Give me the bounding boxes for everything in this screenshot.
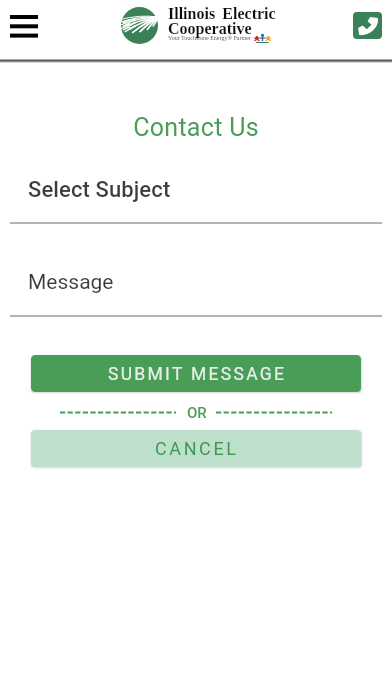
staticText: SUBMIT MESSAGE	[108, 364, 287, 385]
button[interactable]: CANCEL	[31, 430, 361, 467]
button[interactable]: Message	[10, 259, 382, 306]
staticText: Contact Us	[0, 113, 392, 142]
button[interactable]: Select Subject	[10, 166, 382, 213]
button[interactable]: SUBMIT MESSAGE	[31, 355, 361, 392]
button[interactable]: Call	[353, 12, 382, 39]
staticText: Select Subject	[28, 177, 171, 203]
staticText: Your Touchstone Energy® Partner	[168, 35, 251, 42]
staticText: Illinois Electric	[168, 5, 276, 23]
staticText: Cooperative	[168, 20, 252, 38]
staticText: Message	[28, 270, 114, 295]
button[interactable]: Menu	[0, 2, 48, 50]
staticText: CANCEL	[155, 438, 239, 459]
staticText: OR	[187, 404, 207, 420]
